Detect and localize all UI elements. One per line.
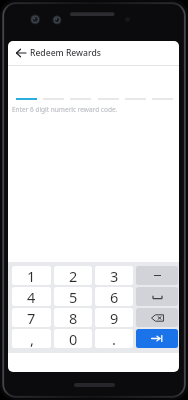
staticText: Enter 6 digit numeric reward code. (12, 105, 118, 114)
button[interactable]: 6 (95, 287, 133, 306)
button[interactable]: 8 (54, 308, 92, 327)
button[interactable]: . (95, 329, 133, 348)
staticText: 1 (27, 266, 36, 285)
staticText: , (30, 329, 34, 348)
button[interactable]: Backspace (136, 308, 178, 327)
button[interactable]: 2 (54, 266, 92, 285)
staticText: 8 (69, 308, 78, 327)
button[interactable]: , (12, 329, 51, 348)
staticText: 5 (69, 287, 78, 306)
staticText: 0 (69, 329, 78, 348)
button[interactable]: 3 (95, 266, 133, 285)
button[interactable]: 5 (54, 287, 92, 306)
button[interactable]: 0 (54, 329, 92, 348)
button[interactable]: 7 (12, 308, 51, 327)
button[interactable]: Space (136, 287, 178, 306)
button[interactable]: 9 (95, 308, 133, 327)
button[interactable]: Next (136, 329, 178, 348)
staticText: 7 (27, 308, 36, 327)
button[interactable]: Dash (136, 266, 178, 285)
staticText: 2 (69, 266, 78, 285)
staticText: 6 (110, 287, 119, 306)
staticText: 4 (27, 287, 36, 306)
button[interactable]: 4 (12, 287, 51, 306)
button[interactable]: 1 (12, 266, 51, 285)
staticText: Redeem Rewards (30, 47, 101, 59)
staticText: 9 (110, 308, 119, 327)
staticText: 3 (110, 266, 119, 285)
staticText: . (112, 329, 116, 348)
button[interactable]: Back (13, 45, 29, 61)
